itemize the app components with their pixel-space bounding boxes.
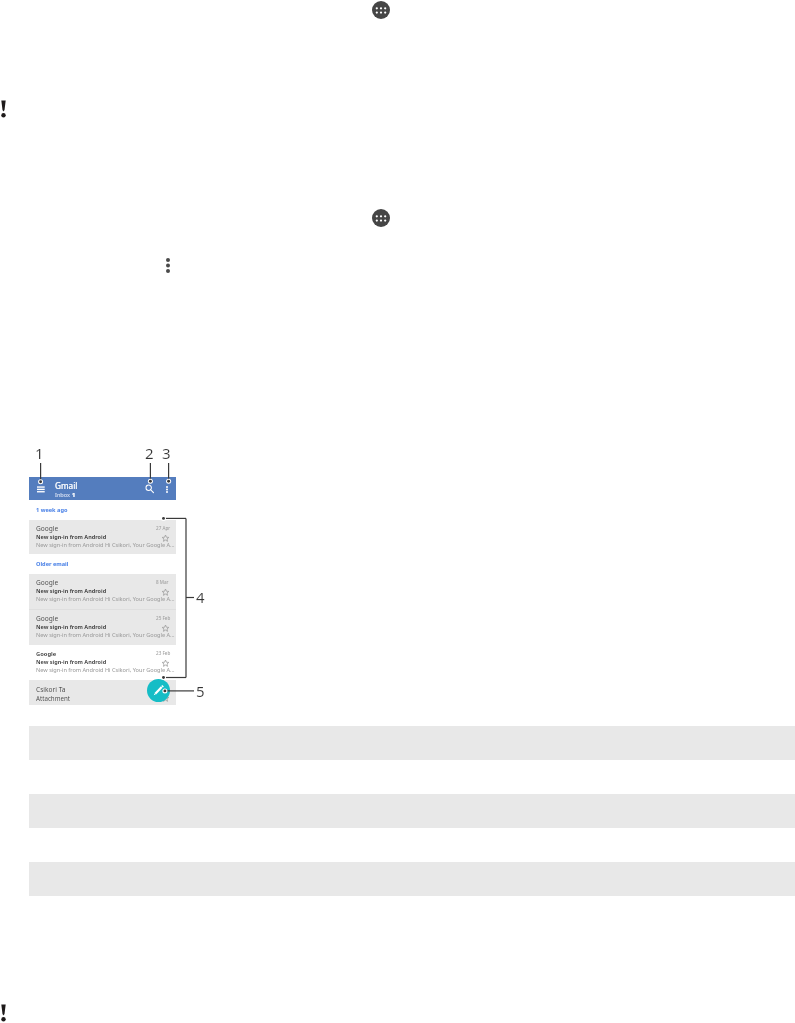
staticText: 2 [145,443,154,463]
button[interactable]: Search [146,485,155,494]
staticText: Inbox [55,491,72,499]
staticText: 4 [196,587,205,607]
staticText: New sign-in from Android [36,587,107,594]
button[interactable]: Google [29,520,176,554]
button[interactable]: Google [29,645,176,680]
staticText: Google [36,578,59,587]
staticText: New sign-in from Android [36,533,107,540]
button[interactable]: Compose [147,679,170,702]
staticText: 3 [162,443,171,463]
staticText: New sign-in from Android Hi Csikori, You… [36,666,175,674]
button[interactable]: Apps [372,1,390,19]
staticText: New sign-in from Android Hi Csikori, You… [36,541,175,549]
staticText: 8 Mar [156,579,169,585]
staticText: Google [36,650,57,658]
staticText: 1 week ago [36,506,68,514]
staticText: New sign-in from Android [36,623,107,630]
staticText: Google [36,524,59,533]
staticText: New sign-in from Android Hi Csikori, You… [36,595,175,603]
staticText: Csikori Ta [36,685,66,694]
button[interactable]: More options [166,486,168,493]
button[interactable]: More options [166,258,170,273]
staticText: Attachment [36,694,71,702]
button[interactable]: Csikori Ta [29,680,176,705]
staticText: 1 [35,443,44,463]
staticText: 1 [72,491,76,499]
staticText: Older email [36,560,69,568]
staticText: Google [36,614,59,623]
button[interactable]: Navigation menu [35,485,45,492]
staticText: Gmail [55,480,78,491]
staticText: 23 Feb [156,650,171,656]
staticText: 27 Apr [156,525,171,531]
staticText: 25 Feb [156,615,171,621]
button[interactable]: Google [29,610,176,645]
staticText: New sign-in from Android [36,658,107,665]
staticText: New sign-in from Android Hi Csikori, You… [36,631,175,639]
staticText: 5 [196,681,205,701]
button[interactable]: Google [29,574,176,609]
button[interactable]: Apps [372,209,390,227]
